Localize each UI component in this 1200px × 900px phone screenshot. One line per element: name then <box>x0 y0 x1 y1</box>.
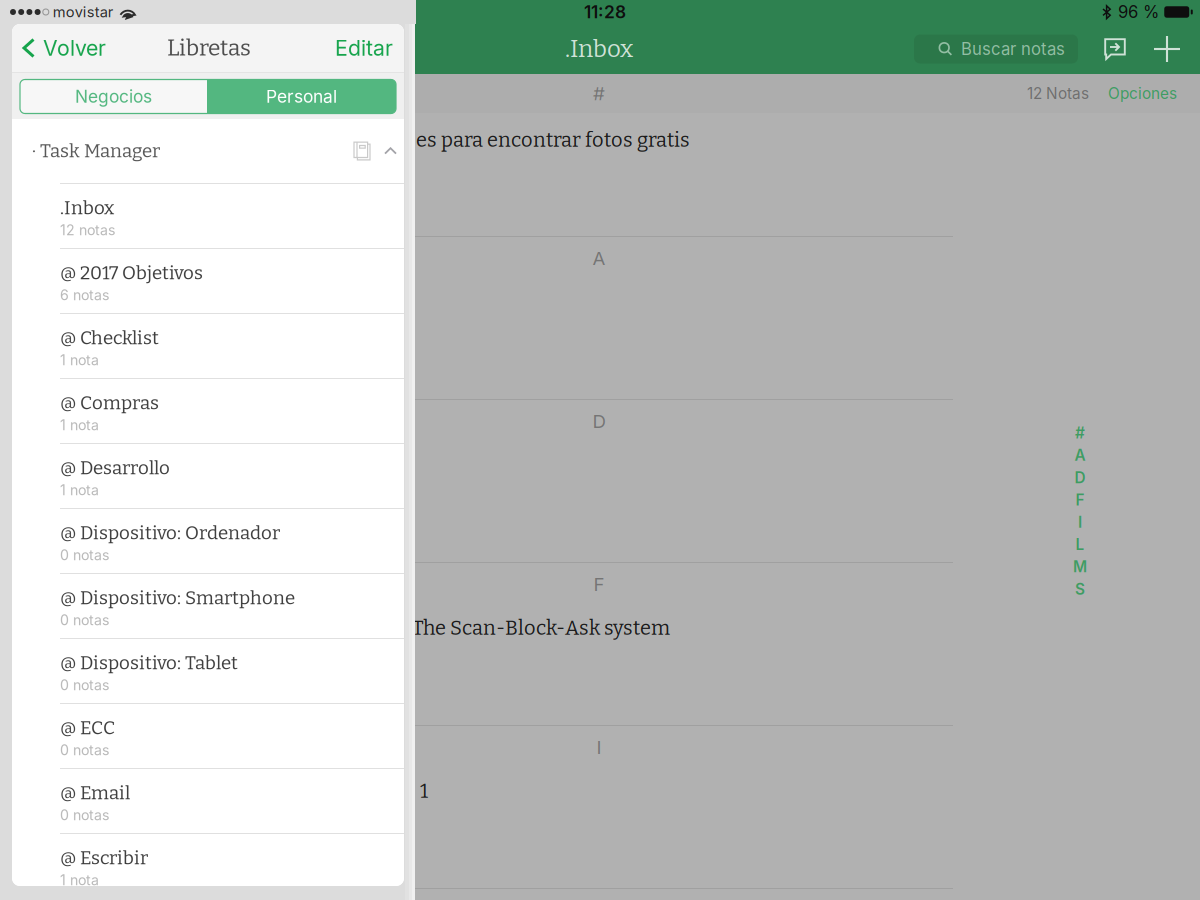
staticText: L <box>1075 535 1084 554</box>
staticText: .Inbox <box>565 35 633 63</box>
button[interactable]: Libreta <box>353 141 371 160</box>
staticText: .Inbox <box>60 197 114 219</box>
button[interactable]: Opciones <box>1089 84 1200 103</box>
staticText: 96 % <box>1118 2 1159 22</box>
staticText: Volver <box>43 35 106 61</box>
button[interactable]: @ ECC <box>12 704 404 769</box>
staticText: 0 notas <box>60 611 109 628</box>
button[interactable]: @ Desarrollo <box>12 444 404 509</box>
staticText: Editar <box>335 35 393 61</box>
button[interactable]: @ Dispositivo: Tablet <box>12 639 404 704</box>
staticText: @ Checklist <box>60 327 159 349</box>
staticText: 1 nota <box>60 416 99 433</box>
button[interactable]: Editar <box>335 24 404 72</box>
button[interactable]: @ Checklist <box>12 314 404 379</box>
button[interactable]: @ Dispositivo: Ordenador <box>12 509 404 574</box>
staticText: @ Compras <box>60 392 159 414</box>
button[interactable]: Mover nota <box>1078 38 1126 60</box>
button[interactable]: A <box>1068 444 1092 466</box>
staticText: 12 notas <box>60 221 115 238</box>
staticText: movistar <box>53 3 114 21</box>
staticText: @ Email <box>60 782 130 804</box>
staticText: @ 2017 Objetivos <box>60 262 203 284</box>
staticText: I <box>596 736 601 759</box>
staticText: @ Dispositivo: Tablet <box>60 652 238 674</box>
staticText: I <box>1078 513 1082 531</box>
staticText: 1 nota <box>60 481 99 498</box>
staticText: 0 notas <box>60 546 109 563</box>
staticText: A <box>1074 446 1085 465</box>
staticText: 6 notas <box>60 286 109 303</box>
staticText: es para encontrar fotos gratis <box>416 128 690 152</box>
button[interactable]: M <box>1068 556 1092 578</box>
staticText: @ ECC <box>60 717 115 739</box>
staticText: Personal <box>266 86 337 107</box>
staticText: 0 notas <box>60 806 109 823</box>
staticText: Negocios <box>75 86 152 107</box>
staticText: M <box>1073 557 1087 576</box>
staticText: 12 Notas <box>1027 84 1089 103</box>
button[interactable]: @ Compras <box>12 379 404 444</box>
staticText: 0 notas <box>60 676 109 693</box>
staticText: F <box>1075 491 1084 509</box>
staticText: Opciones <box>1108 84 1177 103</box>
button[interactable]: # <box>1068 422 1092 444</box>
staticText: D <box>592 410 605 433</box>
button[interactable]: Contraer Task Manager <box>371 147 404 155</box>
staticText: A <box>592 247 605 270</box>
button[interactable]: D <box>1068 466 1092 489</box>
staticText: @ Dispositivo: Ordenador <box>60 522 280 544</box>
staticText: F <box>593 573 604 596</box>
staticText: @ Desarrollo <box>60 457 170 479</box>
button[interactable]: L <box>1068 533 1092 556</box>
staticText: @ Dispositivo: Smartphone <box>60 587 295 609</box>
staticText: @ Escribir <box>60 847 148 869</box>
staticText: 1 nota <box>60 871 99 888</box>
button[interactable]: Volver <box>12 24 106 72</box>
button[interactable]: Personal <box>207 79 396 113</box>
staticText: # <box>1075 424 1085 442</box>
staticText: # <box>593 82 605 105</box>
button[interactable]: .Inbox <box>12 184 404 249</box>
staticText: The Scan-Block-Ask system <box>412 616 670 640</box>
staticText: 11:28 <box>584 1 626 22</box>
staticText: D <box>1074 468 1085 487</box>
button[interactable]: @ 2017 Objetivos <box>12 249 404 314</box>
staticText: 1 nota <box>60 351 99 368</box>
staticText: 1 <box>420 779 428 803</box>
button[interactable]: I <box>1068 511 1092 533</box>
button[interactable]: @ Escribir <box>12 834 404 899</box>
button[interactable]: Negocios <box>20 79 207 113</box>
button[interactable]: @ Dispositivo: Smartphone <box>12 574 404 639</box>
staticText: 0 notas <box>60 741 109 758</box>
staticText: Libretas <box>167 34 251 62</box>
staticText: · Task Manager <box>32 140 160 162</box>
staticText: Buscar notas <box>961 39 1065 59</box>
button[interactable]: @ Email <box>12 769 404 834</box>
staticText: S <box>1075 580 1085 598</box>
button[interactable]: Nueva nota <box>1126 36 1200 62</box>
button[interactable]: F <box>1068 489 1092 511</box>
button[interactable]: S <box>1068 578 1092 600</box>
